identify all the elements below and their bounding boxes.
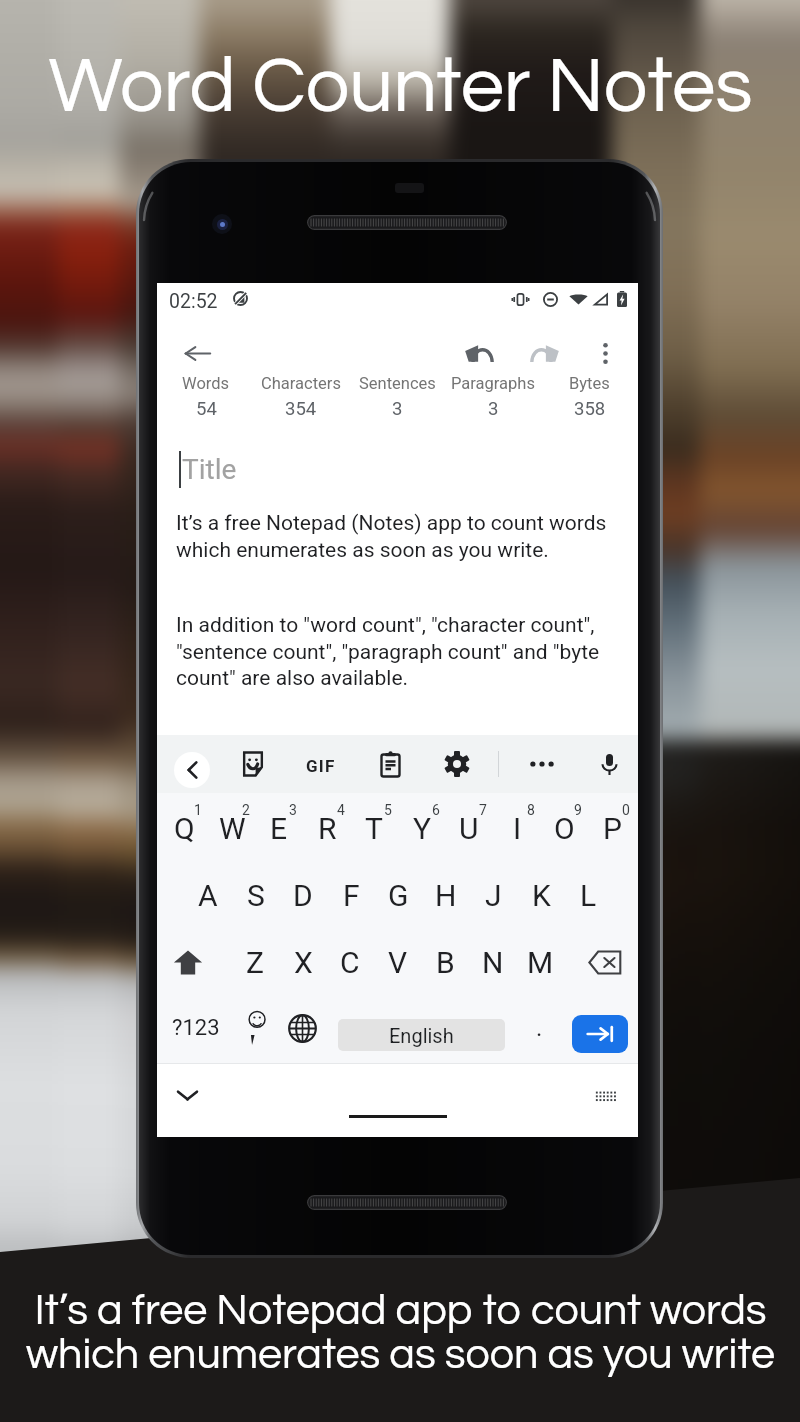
button[interactable]: M [516,929,564,996]
button[interactable]: Words [158,374,254,420]
button[interactable]: T [350,795,398,862]
button[interactable]: Z [231,929,279,996]
staticText: H [435,878,457,913]
button[interactable]: K [517,862,565,929]
button[interactable]: R [303,795,351,862]
button[interactable]: O [540,795,588,862]
button[interactable]: S [232,862,280,929]
button[interactable]: Q [160,795,208,862]
staticText: 0 [622,802,630,818]
staticText: 358 [574,398,606,420]
staticText: 3 [289,802,297,818]
staticText: It’s a free Notepad app to count words [34,1289,767,1333]
button[interactable]: Clipboard [369,743,411,785]
staticText: C [340,945,360,980]
button[interactable]: N [469,929,517,996]
button[interactable]: W [208,795,256,862]
button[interactable]: Enter [572,1015,628,1053]
button[interactable]: Stickers [232,743,274,785]
staticText: L [580,878,597,913]
staticText: T [365,811,383,846]
button[interactable]: A [184,862,232,929]
button[interactable]: Characters [253,374,349,420]
button[interactable]: GIF [297,752,344,780]
staticText: 1 [194,802,202,818]
staticText: X [294,945,313,980]
button[interactable]: H [422,862,470,929]
button[interactable]: I [493,795,541,862]
staticText: GIF [306,756,336,776]
staticText: Sentences [359,374,436,393]
button[interactable]: B [421,929,469,996]
button[interactable]: V [374,929,422,996]
staticText: Y [413,811,432,846]
staticText: N [482,945,504,980]
staticText: J [485,878,502,913]
staticText: Paragraphs [451,374,535,393]
staticText: R [318,811,337,846]
button[interactable]: Emoji [233,1000,279,1056]
staticText: 6 [432,802,440,818]
button[interactable]: . [517,1000,561,1056]
staticText: Word Counter Notes [48,47,753,127]
staticText: In addition to "word count", "character … [176,613,600,690]
button[interactable]: Paragraphs [445,374,541,420]
staticText: W [219,811,246,846]
staticText: M [527,945,554,980]
button[interactable]: J [469,862,517,929]
button[interactable]: Redo [521,330,567,376]
staticText: B [436,945,455,980]
staticText: Q [174,811,195,846]
staticText: . [536,1014,543,1042]
button[interactable]: X [279,929,327,996]
button[interactable]: English [338,1019,505,1051]
button[interactable]: More [521,743,563,785]
staticText: Characters [261,374,341,393]
button[interactable]: G [374,862,422,929]
button[interactable]: Sentences [349,374,445,420]
staticText: Title [182,453,237,486]
staticText: 8 [527,802,535,818]
button[interactable]: Back [174,330,220,376]
staticText: O [554,811,575,846]
staticText: A [198,878,218,913]
staticText: 9 [574,802,582,818]
staticText: I [513,811,522,846]
button[interactable]: E [255,795,303,862]
staticText: F [343,878,360,913]
staticText: 4 [337,802,345,818]
button[interactable]: P [588,795,636,862]
staticText: 5 [384,802,392,818]
staticText: G [388,878,409,913]
staticText: 3 [488,398,499,420]
button[interactable]: Undo [456,330,502,376]
staticText: E [270,811,288,846]
button[interactable]: More options [582,330,628,376]
button[interactable]: Bytes [541,374,637,420]
button[interactable]: U [445,795,493,862]
button[interactable]: Switch keyboard [585,1074,627,1116]
button[interactable]: Shift [161,929,215,996]
button[interactable]: Settings [436,743,478,785]
staticText: Z [246,945,264,980]
button[interactable]: D [279,862,327,929]
button[interactable]: Close suggestions [174,752,210,788]
staticText: English [389,1024,454,1047]
button[interactable]: C [326,929,374,996]
button[interactable]: L [564,862,612,929]
button[interactable]: ?123 [165,1000,227,1056]
staticText: 3 [392,398,403,420]
staticText: 54 [196,398,217,420]
staticText: Bytes [569,374,610,393]
staticText: It’s a free Notepad (Notes) app to count… [176,511,607,562]
button[interactable]: Voice input [588,743,630,785]
staticText: P [603,811,622,846]
button[interactable]: Y [398,795,446,862]
staticText: ?123 [172,1015,220,1041]
staticText: V [388,945,408,980]
button[interactable]: F [327,862,375,929]
staticText: K [532,878,551,913]
button[interactable]: Backspace [577,929,633,996]
button[interactable]: Hide keyboard [166,1074,208,1116]
button[interactable]: Change keyboard language [279,1000,325,1056]
